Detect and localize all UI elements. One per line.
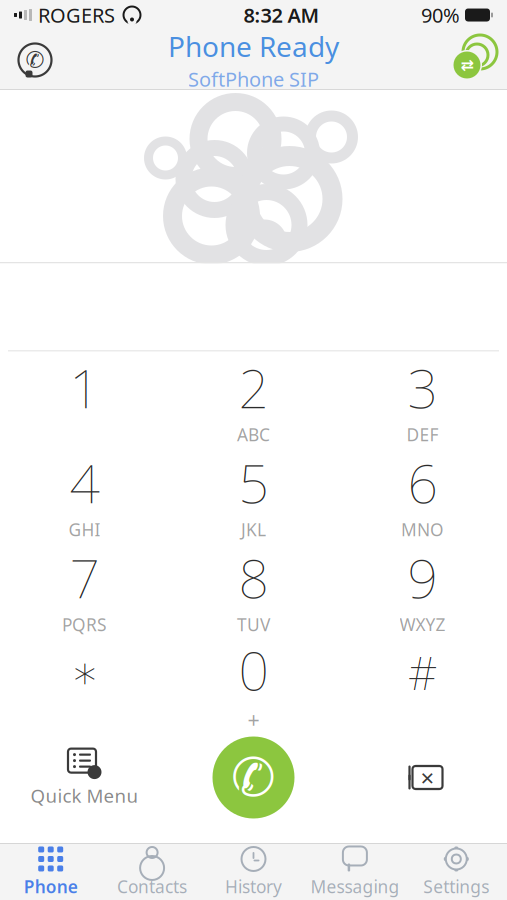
- staticText: History: [225, 875, 282, 898]
- staticText: 90%: [421, 2, 460, 28]
- staticText: 2: [238, 352, 268, 423]
- staticText: ✆: [25, 47, 44, 73]
- button[interactable]: Call: [169, 731, 338, 823]
- staticText: Contacts: [117, 875, 187, 898]
- button[interactable]: Delete: [338, 731, 507, 823]
- staticText: GHI: [68, 518, 100, 541]
- button[interactable]: 6: [338, 446, 507, 541]
- button[interactable]: 8: [169, 541, 338, 636]
- staticText: ∗: [70, 647, 98, 698]
- staticText: Settings: [423, 875, 489, 898]
- button[interactable]: Contacts: [101, 844, 203, 900]
- button[interactable]: 0: [169, 636, 338, 731]
- button[interactable]: 7: [0, 541, 169, 636]
- staticText: Messaging: [310, 875, 399, 898]
- staticText: 0: [238, 634, 268, 705]
- staticText: ⇄: [460, 56, 473, 74]
- staticText: 1: [69, 352, 99, 423]
- button[interactable]: 5: [169, 446, 338, 541]
- staticText: Quick Menu: [30, 783, 138, 808]
- staticText: 7: [69, 542, 99, 613]
- staticText: PQRS: [62, 613, 107, 636]
- staticText: +: [247, 705, 259, 733]
- button[interactable]: 1: [0, 351, 169, 446]
- staticText: 6: [407, 447, 437, 518]
- staticText: 5: [238, 447, 268, 518]
- button[interactable]: Settings: [406, 844, 507, 900]
- staticText: #: [408, 642, 437, 703]
- button[interactable]: #: [338, 636, 507, 731]
- staticText: ABC: [237, 423, 270, 446]
- button[interactable]: 9: [338, 541, 507, 636]
- button[interactable]: History: [203, 844, 304, 900]
- staticText: 9: [407, 542, 437, 613]
- staticText: 8:32 AM: [243, 2, 319, 28]
- staticText: 8: [238, 542, 268, 613]
- staticText: 4: [69, 447, 99, 518]
- staticText: ROGERS: [38, 2, 115, 28]
- staticText: MNO: [401, 518, 444, 541]
- staticText: DEF: [406, 423, 438, 446]
- button[interactable]: Network status: [445, 35, 499, 85]
- staticText: ×: [420, 762, 434, 793]
- staticText: TUV: [237, 613, 270, 636]
- button[interactable]: Quick Menu: [0, 731, 169, 823]
- button[interactable]: 4: [0, 446, 169, 541]
- staticText: Phone Ready: [168, 28, 339, 65]
- button[interactable]: Messaging: [304, 844, 406, 900]
- staticText: WXYZ: [399, 613, 445, 636]
- button[interactable]: ∗: [0, 636, 169, 731]
- staticText: JKL: [241, 518, 266, 541]
- staticText: 3: [407, 352, 437, 423]
- button[interactable]: 3: [338, 351, 507, 446]
- staticText: Phone: [24, 875, 78, 898]
- staticText: SoftPhone SIP: [188, 66, 319, 92]
- button[interactable]: Phone: [0, 844, 101, 900]
- button[interactable]: 2: [169, 351, 338, 446]
- staticText: ✆: [231, 747, 276, 808]
- button[interactable]: Call quality: [8, 35, 62, 85]
